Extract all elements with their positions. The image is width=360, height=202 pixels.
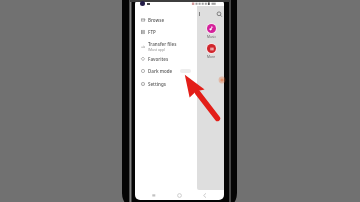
staticText: Transfer files (148, 41, 177, 47)
staticText: (Must app) (148, 47, 166, 52)
other: Music (206, 23, 217, 34)
other: Pointer (0, 0, 360, 202)
button[interactable]: More (205, 43, 218, 58)
button[interactable]: Browse (135, 14, 197, 25)
button[interactable]: Transfer files (135, 41, 197, 52)
staticText: More (207, 54, 216, 58)
staticText: Browse (148, 17, 165, 23)
button[interactable]: Dark mode (135, 65, 197, 76)
staticText: Music (207, 34, 217, 38)
staticText: Favorites (148, 56, 169, 62)
staticText: FTP (148, 29, 156, 35)
staticText: Dark mode (148, 68, 173, 74)
staticText: Settings (148, 81, 166, 87)
button[interactable]: Music (205, 23, 218, 38)
button[interactable]: Settings (135, 78, 197, 89)
button[interactable]: FTP (135, 26, 197, 37)
other: More (206, 43, 217, 54)
button[interactable]: Favorites (135, 53, 197, 64)
button[interactable]: Account (140, 1, 145, 6)
